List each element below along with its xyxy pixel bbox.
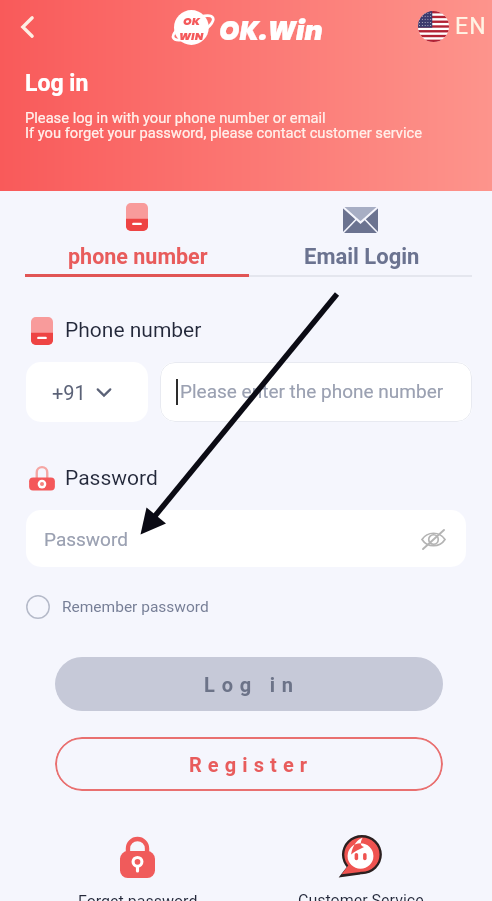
staticText: Remember password bbox=[62, 598, 209, 616]
button[interactable]: Email Login bbox=[249, 191, 472, 276]
button[interactable]: Log in bbox=[55, 657, 443, 711]
staticText: OK.Win bbox=[219, 13, 323, 49]
button[interactable]: Please enter the phone number bbox=[160, 362, 472, 422]
staticText: +91 bbox=[52, 381, 86, 404]
staticText: If you forget your password, please cont… bbox=[25, 124, 422, 141]
staticText: WIN bbox=[179, 28, 204, 43]
staticText: Phone number bbox=[65, 318, 202, 343]
staticText: Forget password bbox=[78, 892, 198, 901]
button[interactable]: Register bbox=[55, 737, 443, 791]
button[interactable]: Back bbox=[6, 6, 48, 48]
staticText: Email Login bbox=[304, 244, 420, 270]
button[interactable]: +91 bbox=[26, 362, 148, 422]
staticText: EN bbox=[455, 13, 488, 40]
staticText: Register bbox=[189, 753, 314, 776]
staticText: Please log in with your phone number or … bbox=[25, 109, 326, 126]
button[interactable]: EN bbox=[418, 11, 488, 42]
staticText: Customer Service bbox=[298, 891, 424, 901]
staticText: phone number bbox=[68, 244, 208, 269]
staticText: Please enter the phone number bbox=[180, 380, 444, 402]
staticText: OK bbox=[183, 13, 200, 28]
staticText: Log in bbox=[204, 673, 300, 696]
button[interactable]: Show password bbox=[418, 524, 448, 554]
staticText: Password bbox=[44, 528, 128, 550]
button[interactable]: Remember password bbox=[26, 595, 209, 619]
button[interactable]: Password bbox=[26, 510, 466, 567]
button[interactable]: Forget password bbox=[60, 836, 215, 901]
button[interactable]: Customer Service bbox=[283, 833, 438, 901]
staticText: Log in bbox=[25, 70, 89, 97]
staticText: Password bbox=[65, 466, 158, 491]
button[interactable]: phone number bbox=[25, 191, 249, 276]
